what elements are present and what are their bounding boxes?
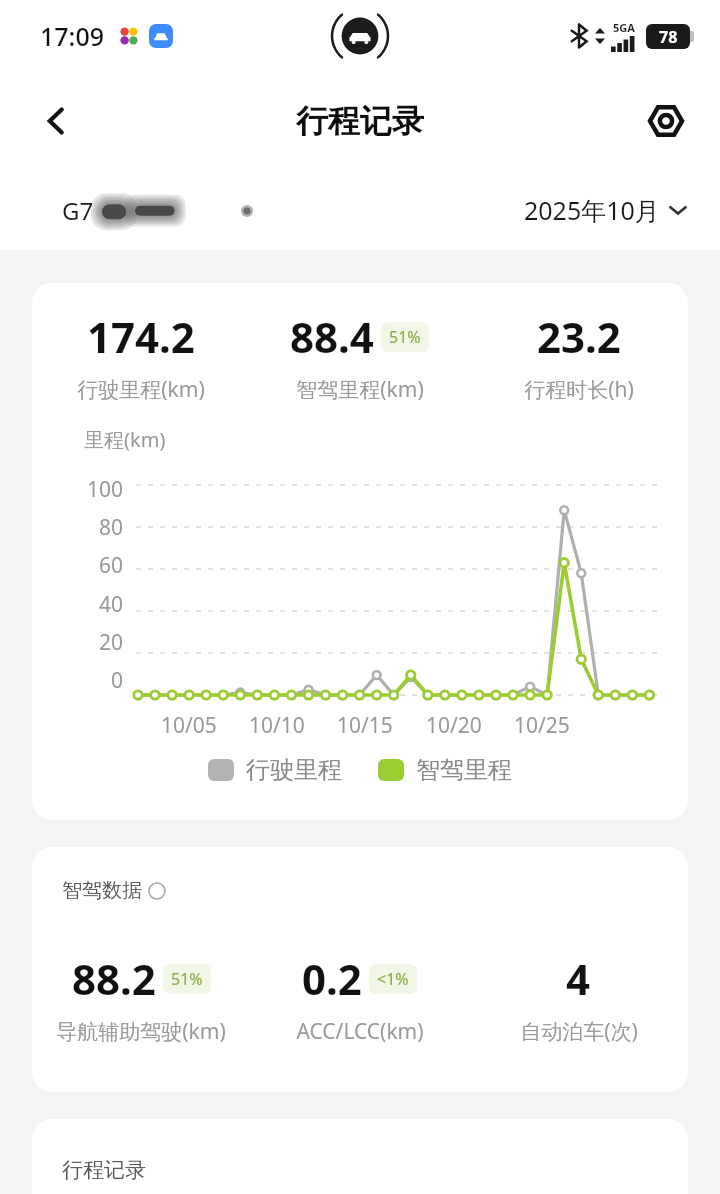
staticText: 行程记录	[62, 1157, 146, 1183]
staticText: 0.2	[302, 950, 362, 1007]
staticText: 行驶里程(km)	[77, 375, 205, 404]
staticText: 23.2	[537, 308, 621, 365]
staticText: 40	[99, 590, 124, 619]
staticText: 51%	[389, 326, 421, 348]
button[interactable]: 行驶里程	[208, 755, 342, 785]
staticText: 174.2	[87, 308, 195, 365]
staticText: 行程记录	[296, 101, 424, 141]
staticText: 88.4	[290, 308, 374, 365]
staticText: 行程时长(h)	[524, 375, 634, 404]
staticText: 智驾里程(km)	[296, 375, 424, 404]
staticText: 10/15	[337, 711, 393, 740]
staticText: 60	[99, 551, 124, 580]
button[interactable]: 0.2	[250, 950, 469, 1046]
button[interactable]: 智驾里程	[378, 755, 512, 785]
staticText: 导航辅助驾驶(km)	[56, 1017, 226, 1046]
staticText: 100	[87, 475, 124, 504]
staticText: 智驾里程	[416, 755, 512, 785]
staticText: 里程(km)	[84, 426, 166, 453]
staticText: <1%	[377, 968, 409, 990]
staticText: G7	[62, 194, 94, 227]
button[interactable]: 2025年10月	[524, 193, 688, 227]
staticText: 20	[99, 628, 124, 657]
staticText: 51%	[171, 968, 203, 990]
staticText: 智驾数据	[62, 878, 142, 903]
staticText: 78	[659, 26, 678, 48]
button[interactable]: 4	[469, 950, 688, 1046]
button[interactable]: Back	[26, 91, 86, 151]
button[interactable]: 88.4	[250, 308, 469, 404]
staticText: 4	[566, 950, 591, 1007]
staticText: 88.2	[72, 950, 156, 1007]
staticText: 行驶里程	[246, 755, 342, 785]
staticText: 10/25	[514, 711, 570, 740]
staticText: 10/10	[249, 711, 305, 740]
button[interactable]: 智驾数据	[62, 878, 166, 903]
button[interactable]: 88.2	[32, 950, 250, 1046]
staticText: 17:09	[40, 19, 105, 53]
staticText: 10/20	[426, 711, 482, 740]
button[interactable]: 174.2	[32, 308, 250, 404]
staticText: 2025年10月	[524, 193, 660, 227]
staticText: 5GA	[613, 20, 635, 35]
staticText: 自动泊车(次)	[520, 1017, 638, 1046]
button[interactable]: Settings	[638, 93, 694, 149]
staticText: 80	[99, 513, 124, 542]
button[interactable]: G7	[62, 194, 256, 227]
staticText: 10/05	[161, 711, 217, 740]
button[interactable]: 23.2	[469, 308, 688, 404]
staticText: ACC/LCC(km)	[296, 1017, 424, 1046]
staticText: 0	[111, 666, 124, 695]
